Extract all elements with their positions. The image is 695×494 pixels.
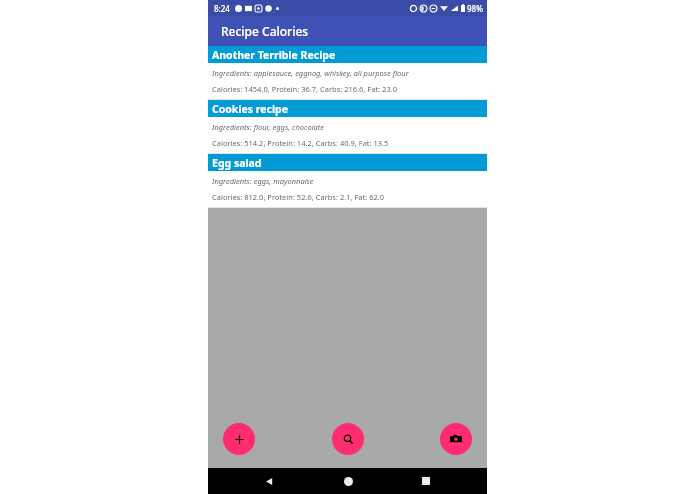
staticText: Another Terrible Recipe bbox=[212, 48, 336, 62]
staticText: Recipe Calories bbox=[221, 23, 309, 39]
button[interactable]: Back bbox=[251, 468, 287, 494]
button[interactable]: Search bbox=[332, 423, 364, 455]
button[interactable]: Home bbox=[330, 468, 366, 494]
button[interactable]: Another Terrible Recipe bbox=[208, 46, 487, 100]
staticText: Ingredients: flour, eggs, chocolate bbox=[212, 122, 325, 132]
button[interactable]: Cookies recipe bbox=[208, 100, 487, 154]
staticText: 8:24 bbox=[214, 3, 230, 14]
staticText: Cookies recipe bbox=[212, 102, 288, 116]
button[interactable]: Recent apps bbox=[408, 468, 444, 494]
staticText: Ingredients: eggs, mayonnaise bbox=[212, 176, 314, 186]
button[interactable]: Recipe Calories bbox=[208, 16, 487, 46]
button[interactable]: Egg salad bbox=[208, 154, 487, 208]
button[interactable]: Add recipe bbox=[223, 423, 255, 455]
staticText: 98% bbox=[467, 3, 483, 14]
staticText: Ingredients: applesauce, eggnog, whiskey… bbox=[212, 68, 409, 78]
staticText: Calories: 514.2, Protein: 14.2, Carbs: 4… bbox=[212, 138, 389, 148]
staticText: Calories: 812.0, Protein: 52.6, Carbs: 2… bbox=[212, 192, 385, 202]
button[interactable]: Take photo bbox=[440, 423, 472, 455]
staticText: Calories: 1454.0, Protein: 36.7, Carbs: … bbox=[212, 84, 397, 94]
staticText: Egg salad bbox=[212, 156, 262, 170]
